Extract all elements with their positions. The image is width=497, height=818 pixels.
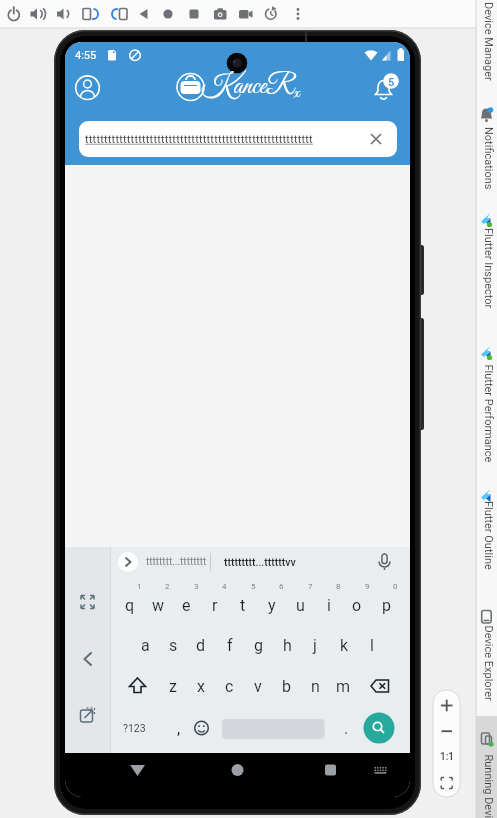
button[interactable]: x <box>187 667 215 705</box>
button[interactable]: . <box>332 709 360 747</box>
staticText: g <box>254 636 263 655</box>
button[interactable]: h <box>273 626 301 664</box>
button[interactable] <box>435 720 459 744</box>
staticText: 1 <box>137 582 142 591</box>
staticText: 5 <box>388 76 395 89</box>
staticText: Flutter Inspector <box>482 228 495 309</box>
button[interactable]: y <box>258 586 286 624</box>
staticText: o <box>352 596 362 615</box>
button[interactable]: Running Devic <box>408 759 497 818</box>
button[interactable]: z <box>159 667 187 705</box>
button[interactable] <box>369 73 398 102</box>
staticText: a <box>141 636 150 655</box>
button[interactable]: Flutter Performance <box>408 383 497 443</box>
staticText: k <box>340 636 349 655</box>
button[interactable] <box>435 694 459 718</box>
staticText: w <box>152 596 165 615</box>
button[interactable]: r <box>201 586 229 624</box>
button[interactable] <box>315 755 345 785</box>
staticText: e <box>182 596 191 615</box>
button[interactable] <box>288 3 308 25</box>
staticText: j <box>313 636 317 655</box>
staticText: 5 <box>251 582 256 591</box>
staticText: 3 <box>194 582 199 591</box>
button[interactable]: w <box>144 586 172 624</box>
staticText: 4 <box>222 582 227 591</box>
button[interactable]: ?123 <box>114 698 154 758</box>
button[interactable]: i <box>315 586 343 624</box>
button[interactable]: q <box>116 586 144 624</box>
staticText: p <box>382 596 391 615</box>
button[interactable] <box>222 755 252 785</box>
button[interactable]: Flutter Inspector <box>408 238 497 298</box>
staticText: Flutter Outline <box>482 501 495 570</box>
button[interactable]: Flutter Outline <box>408 505 497 565</box>
staticText: ttttttttt...ttttttvv <box>224 556 296 568</box>
staticText: h <box>283 636 292 655</box>
button[interactable]: Notifications <box>408 128 497 188</box>
button[interactable] <box>28 3 48 25</box>
button[interactable]: j <box>301 626 329 664</box>
button[interactable]: c <box>215 667 243 705</box>
staticText: tttttttttttttttttttttttttttttttttttttttt… <box>85 133 313 146</box>
button[interactable] <box>210 3 230 25</box>
staticText: tttttttt...tttttttt <box>146 556 207 568</box>
button[interactable] <box>54 3 74 25</box>
staticText: Notifications <box>482 127 495 190</box>
staticText: f <box>227 636 233 655</box>
button[interactable]: g <box>244 626 272 664</box>
button[interactable]: u <box>286 586 314 624</box>
button[interactable]: m <box>329 667 357 705</box>
button[interactable]: tttttttt...tttttttt <box>131 532 221 592</box>
staticText: Device Explorer <box>481 625 494 701</box>
button[interactable]: o <box>343 586 371 624</box>
button[interactable] <box>261 3 281 25</box>
button[interactable] <box>184 3 204 25</box>
button[interactable] <box>73 73 102 102</box>
staticText: 2 <box>165 582 170 591</box>
button[interactable] <box>79 121 397 157</box>
staticText: z <box>169 677 177 696</box>
button[interactable]: l <box>358 626 386 664</box>
button[interactable] <box>109 3 129 25</box>
button[interactable]: Device Explorer <box>408 633 497 693</box>
button[interactable]: t <box>229 586 257 624</box>
button[interactable]: a <box>131 626 159 664</box>
staticText: Device Manager <box>482 2 495 81</box>
button[interactable] <box>435 772 459 796</box>
button[interactable] <box>363 712 395 744</box>
staticText: 9 <box>365 582 370 591</box>
button[interactable]: 1:1 <box>432 727 462 787</box>
button[interactable] <box>4 3 24 25</box>
staticText: i <box>327 596 331 615</box>
button[interactable]: p <box>372 586 400 624</box>
staticText: x <box>197 677 205 696</box>
button[interactable] <box>79 3 99 25</box>
staticText: ?123 <box>123 722 146 734</box>
button[interactable]: v <box>244 667 272 705</box>
button[interactable]: , <box>165 709 193 747</box>
button[interactable]: s <box>159 626 187 664</box>
staticText: 4:55 <box>75 49 97 62</box>
staticText: Flutter Performance <box>481 364 494 462</box>
button[interactable]: ttttttttt...ttttttvv <box>212 532 307 592</box>
button[interactable]: b <box>272 667 300 705</box>
button[interactable] <box>133 3 153 25</box>
staticText: l <box>370 636 374 655</box>
button[interactable]: d <box>187 626 215 664</box>
button[interactable]: f <box>216 626 244 664</box>
staticText: KanceRx <box>201 70 300 104</box>
button[interactable]: n <box>301 667 329 705</box>
staticText: 1:1 <box>440 751 455 763</box>
button[interactable]: k <box>330 626 358 664</box>
button[interactable] <box>368 757 394 783</box>
button[interactable] <box>158 3 178 25</box>
button[interactable]: Device Manager <box>408 11 497 71</box>
button[interactable] <box>235 3 255 25</box>
staticText: d <box>196 636 206 655</box>
button[interactable] <box>364 127 388 151</box>
button[interactable] <box>123 755 153 785</box>
button[interactable]: e <box>172 586 200 624</box>
staticText: 6 <box>279 582 284 591</box>
